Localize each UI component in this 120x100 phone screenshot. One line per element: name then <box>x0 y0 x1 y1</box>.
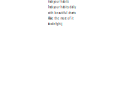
staticText: Track your habits <box>47 0 68 3</box>
staticText: abcdefghij <box>47 22 62 26</box>
staticText: Make the most of it <box>47 17 73 20</box>
staticText: with beautiful charts <box>47 11 75 15</box>
staticText: Track your habits daily <box>47 5 75 9</box>
